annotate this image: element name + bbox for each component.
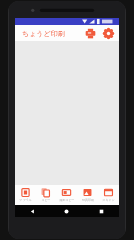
staticText: ファイル xyxy=(19,198,32,202)
staticText: 写真印刷 xyxy=(82,198,94,202)
button[interactable]: Print xyxy=(81,25,99,41)
button[interactable]: スキャン xyxy=(98,185,119,205)
button[interactable]: Settings xyxy=(99,25,117,41)
button[interactable]: Home xyxy=(49,205,84,217)
staticText: コピー xyxy=(41,198,51,202)
button[interactable]: 写真印刷 xyxy=(77,185,98,205)
button[interactable]: 撮影コピー xyxy=(56,185,77,205)
button[interactable]: Recent apps xyxy=(84,205,119,217)
staticText: ちょうど印刷 xyxy=(22,29,65,38)
staticText: スキャン xyxy=(102,198,115,202)
button[interactable]: ファイル xyxy=(15,185,35,205)
button[interactable]: Back xyxy=(15,205,49,217)
button[interactable]: コピー xyxy=(35,185,56,205)
staticText: 撮影コピー xyxy=(59,198,75,202)
